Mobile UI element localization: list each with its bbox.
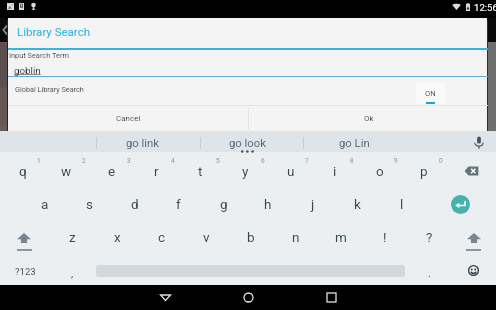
- staticText: c: [158, 229, 166, 245]
- staticText: 5: [216, 157, 220, 165]
- button[interactable]: Home: [236, 285, 261, 310]
- button[interactable]: b: [228, 221, 273, 253]
- staticText: ON: [425, 89, 436, 98]
- button[interactable]: x: [95, 221, 140, 253]
- button[interactable]: Shift: [467, 233, 481, 243]
- staticText: z: [69, 229, 76, 245]
- staticText: e: [108, 163, 116, 179]
- staticText: o: [376, 163, 384, 179]
- button[interactable]: m: [318, 221, 363, 253]
- staticText: n: [292, 229, 300, 245]
- staticText: g: [220, 196, 228, 212]
- button[interactable]: t: [178, 155, 223, 187]
- button[interactable]: go link: [95, 131, 191, 152]
- staticText: 9: [394, 157, 398, 165]
- button[interactable]: g: [201, 188, 246, 220]
- button[interactable]: a: [22, 188, 67, 220]
- button[interactable]: y: [223, 155, 268, 187]
- button[interactable]: go Lin: [306, 131, 402, 152]
- staticText: 7: [305, 157, 309, 165]
- staticText: j: [311, 196, 315, 212]
- button[interactable]: n: [273, 221, 318, 253]
- staticText: 2: [82, 157, 86, 165]
- button[interactable]: l: [379, 188, 424, 220]
- staticText: d: [131, 196, 139, 212]
- staticText: x: [114, 229, 121, 245]
- staticText: q: [19, 163, 27, 179]
- button[interactable]: i: [312, 155, 357, 187]
- button[interactable]: r: [134, 155, 179, 187]
- staticText: Library Search: [17, 25, 90, 38]
- staticText: s: [86, 196, 93, 212]
- staticText: 3: [127, 157, 131, 165]
- button[interactable]: Ok: [249, 106, 488, 131]
- button[interactable]: e: [89, 155, 134, 187]
- staticText: ,: [71, 267, 74, 280]
- button[interactable]: !: [362, 221, 407, 253]
- staticText: y: [242, 163, 249, 179]
- button[interactable]: c: [139, 221, 184, 253]
- staticText: r: [154, 163, 159, 179]
- staticText: b: [247, 229, 255, 245]
- staticText: v: [203, 229, 210, 245]
- button[interactable]: Shift: [17, 233, 31, 243]
- button[interactable]: j: [290, 188, 335, 220]
- staticText: i: [333, 163, 337, 179]
- staticText: 6: [261, 157, 265, 165]
- staticText: !: [383, 229, 387, 245]
- button[interactable]: u: [268, 155, 313, 187]
- staticText: 12:56: [474, 2, 496, 13]
- button[interactable]: Voice input: [471, 134, 487, 150]
- button[interactable]: Cancel: [8, 106, 248, 131]
- staticText: .: [428, 267, 431, 280]
- button[interactable]: v: [184, 221, 229, 253]
- staticText: m: [335, 229, 347, 245]
- staticText: Cancel: [116, 114, 141, 123]
- button[interactable]: p: [401, 155, 446, 187]
- staticText: h: [264, 196, 272, 212]
- staticText: go Lin: [339, 137, 370, 150]
- button[interactable]: go look: [199, 131, 295, 152]
- button[interactable]: w: [44, 155, 89, 187]
- button[interactable]: o: [357, 155, 402, 187]
- button[interactable]: ?: [407, 221, 452, 253]
- button[interactable]: Emoji: [468, 265, 479, 276]
- staticText: ?123: [15, 266, 36, 277]
- staticText: go link: [126, 137, 160, 150]
- button[interactable]: z: [50, 221, 95, 253]
- button[interactable]: f: [156, 188, 201, 220]
- staticText: Input Search Term: [9, 51, 69, 60]
- button[interactable]: q: [0, 155, 45, 187]
- staticText: w: [61, 163, 72, 179]
- staticText: 0: [439, 157, 443, 165]
- button[interactable]: s: [67, 188, 112, 220]
- button[interactable]: Backspace: [464, 165, 479, 177]
- staticText: 4: [171, 157, 175, 165]
- staticText: go look: [229, 137, 266, 150]
- button[interactable]: Back: [153, 285, 178, 310]
- staticText: Global Library Search: [15, 85, 84, 94]
- staticText: ?: [426, 229, 433, 245]
- staticText: 1: [37, 157, 41, 165]
- staticText: f: [176, 196, 181, 212]
- button[interactable]: Enter: [451, 195, 470, 214]
- button[interactable]: ON: [416, 83, 445, 104]
- button[interactable]: k: [335, 188, 380, 220]
- staticText: goblin: [14, 65, 41, 76]
- button[interactable]: h: [245, 188, 290, 220]
- staticText: a: [41, 196, 49, 212]
- staticText: p: [420, 163, 428, 179]
- staticText: u: [287, 163, 295, 179]
- staticText: t: [198, 163, 203, 179]
- staticText: k: [354, 196, 361, 212]
- staticText: l: [400, 196, 404, 212]
- staticText: 8: [350, 157, 354, 165]
- staticText: Ok: [364, 114, 374, 123]
- button[interactable]: Recents: [319, 285, 344, 310]
- button[interactable]: d: [112, 188, 157, 220]
